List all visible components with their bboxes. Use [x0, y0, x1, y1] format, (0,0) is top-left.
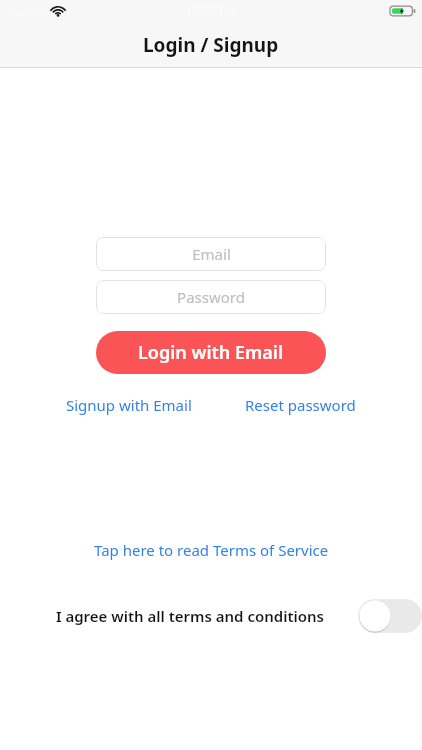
button[interactable]: Reset password	[241, 391, 360, 419]
button[interactable]: Signup with Email	[62, 391, 196, 419]
staticText: Email	[192, 244, 231, 264]
staticText: I agree with all terms and conditions	[56, 606, 324, 626]
button[interactable]: Agree with terms and conditions	[358, 599, 422, 633]
staticText: Password	[177, 287, 245, 307]
staticText: Login with Email	[138, 340, 284, 365]
button[interactable]: Tap here to read Terms of Service	[88, 536, 335, 564]
staticText: Signup with Email	[66, 395, 192, 415]
staticText: Tap here to read Terms of Service	[94, 540, 329, 560]
button[interactable]: Login with Email	[96, 331, 326, 374]
button[interactable]: Password	[96, 280, 326, 314]
button[interactable]: Email	[96, 237, 326, 271]
staticText: Reset password	[245, 395, 356, 415]
staticText: Login / Signup	[143, 32, 279, 58]
